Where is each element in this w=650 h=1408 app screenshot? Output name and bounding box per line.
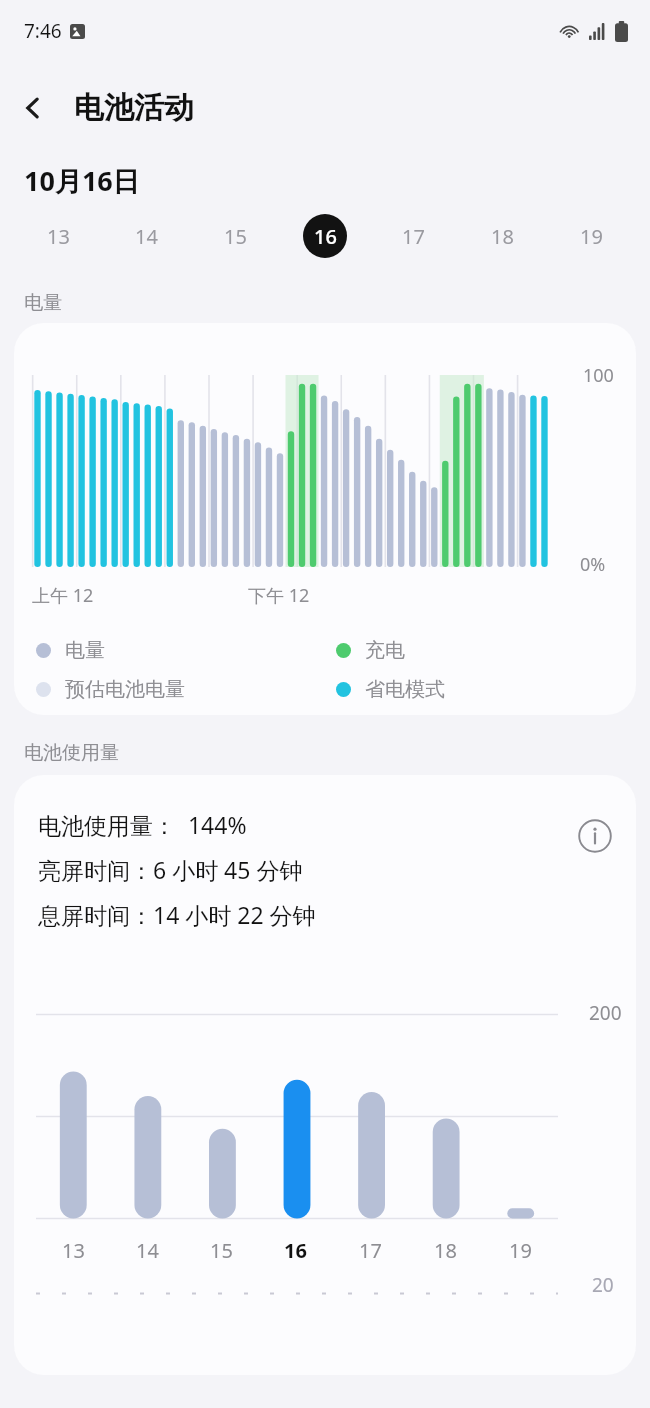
staticText: 14: [136, 1237, 159, 1264]
button[interactable]: 16: [258, 1237, 333, 1264]
button[interactable]: 13: [36, 1237, 110, 1264]
staticText: 18: [491, 223, 514, 250]
button[interactable]: 15: [191, 205, 280, 267]
staticText: 19: [580, 223, 603, 250]
staticText: 0%: [580, 552, 606, 577]
button[interactable]: 17: [333, 1237, 408, 1264]
staticText: 息屏时间：14 小时 22 分钟: [38, 899, 316, 930]
button[interactable]: 14: [110, 1237, 184, 1264]
staticText: 19: [509, 1237, 532, 1264]
button[interactable]: 15: [184, 1237, 258, 1264]
staticText: 15: [210, 1237, 233, 1264]
staticText: 20: [592, 1272, 614, 1298]
staticText: 充电: [365, 638, 405, 663]
button[interactable]: 19: [483, 1237, 558, 1264]
button[interactable]: 18: [408, 1237, 483, 1264]
staticText: 10月16日: [24, 162, 140, 199]
staticText: 电池活动: [74, 89, 194, 127]
staticText: 电量: [24, 291, 62, 315]
staticText: 电池使用量: [24, 741, 119, 765]
button[interactable]: 18: [458, 205, 547, 267]
staticText: 上午 12: [32, 583, 94, 608]
staticText: 200: [589, 1000, 622, 1026]
staticText: 7:46: [24, 18, 62, 44]
staticText: 16: [314, 223, 337, 250]
staticText: 预估电池电量: [65, 677, 185, 702]
staticText: 电池使用量： 144%: [38, 809, 247, 840]
button[interactable]: 19: [547, 205, 636, 267]
staticText: 省电模式: [365, 677, 445, 702]
staticText: 14: [135, 223, 158, 250]
staticText: 13: [62, 1237, 85, 1264]
staticText: 17: [402, 223, 425, 250]
button[interactable]: 13: [14, 205, 102, 267]
button[interactable]: 14: [102, 205, 191, 267]
staticText: 电量: [65, 638, 105, 663]
staticText: 18: [434, 1237, 457, 1264]
staticText: 亮屏时间：6 小时 45 分钟: [38, 854, 303, 885]
staticText: 15: [224, 223, 247, 250]
staticText: 17: [359, 1237, 382, 1264]
button[interactable]: 17: [369, 205, 458, 267]
staticText: 100: [583, 363, 614, 388]
button[interactable]: Info: [568, 809, 622, 863]
staticText: 13: [47, 223, 70, 250]
button[interactable]: Back: [0, 75, 66, 141]
staticText: 16: [284, 1237, 307, 1264]
button[interactable]: 16: [280, 205, 369, 267]
staticText: 下午 12: [248, 583, 310, 608]
